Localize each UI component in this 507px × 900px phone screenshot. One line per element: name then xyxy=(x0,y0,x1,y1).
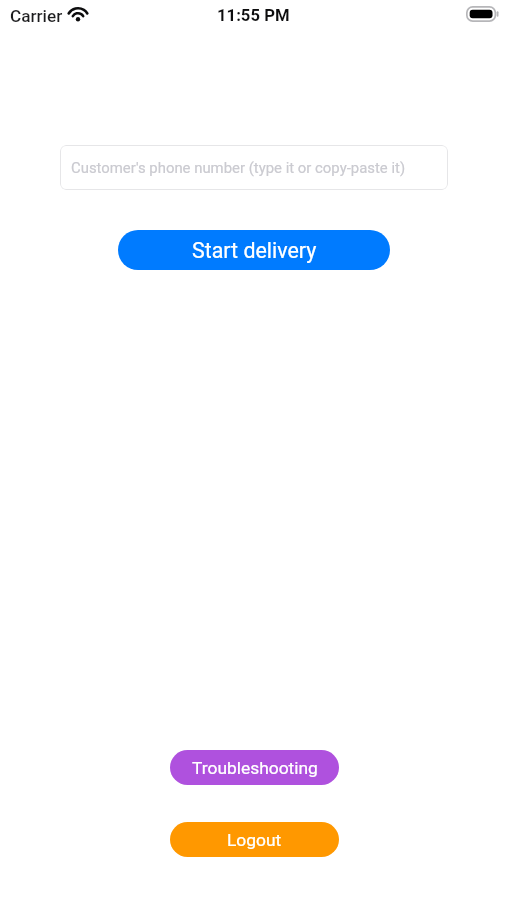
other: Battery xyxy=(466,6,499,22)
button[interactable]: Troubleshooting xyxy=(170,750,339,785)
staticText: Start delivery xyxy=(192,238,317,263)
staticText: Carrier xyxy=(10,6,63,26)
button[interactable]: Customer's phone number (type it or copy… xyxy=(60,145,448,190)
button[interactable]: Start delivery xyxy=(118,230,390,270)
button[interactable]: Logout xyxy=(170,822,339,857)
staticText: 11:55 PM xyxy=(217,6,290,26)
staticText: Customer's phone number (type it or copy… xyxy=(71,159,406,176)
staticText: Troubleshooting xyxy=(192,758,318,778)
staticText: Logout xyxy=(227,830,282,850)
other: Wi-Fi xyxy=(68,7,88,22)
